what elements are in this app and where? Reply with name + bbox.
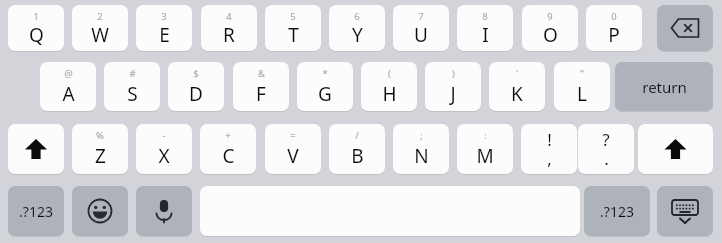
staticText: A (62, 81, 75, 107)
staticText: 7 (418, 10, 424, 23)
button[interactable]: + (200, 124, 256, 174)
staticText: D (189, 81, 203, 107)
button[interactable]: / (329, 124, 385, 174)
button[interactable]: = (265, 124, 321, 174)
staticText: % (96, 129, 104, 142)
staticText: - (162, 129, 166, 142)
staticText: E (159, 22, 170, 48)
staticText: # (129, 67, 136, 80)
button[interactable]: .?123 (8, 186, 64, 236)
button[interactable]: ! (521, 124, 577, 174)
button[interactable]: 2 (72, 5, 128, 51)
staticText: I (482, 22, 489, 48)
staticText: $ (193, 67, 199, 80)
staticText: 2 (97, 10, 103, 23)
staticText: 1 (33, 10, 39, 23)
staticText: B (351, 143, 364, 169)
button[interactable]: 0 (586, 5, 642, 51)
button[interactable]: 4 (201, 5, 257, 51)
staticText: 5 (290, 10, 296, 23)
button[interactable]: @ (40, 62, 96, 111)
button[interactable]: & (233, 62, 289, 111)
staticText: C (222, 143, 235, 169)
staticText: N (414, 143, 429, 169)
staticText: Y (352, 22, 363, 48)
staticText: Z (95, 143, 106, 169)
button[interactable]: 7 (393, 5, 449, 51)
staticText: ) (452, 67, 455, 80)
button[interactable]: - (136, 124, 192, 174)
button[interactable]: Dictation (136, 186, 192, 236)
staticText: S (127, 81, 138, 107)
staticText: 4 (226, 10, 232, 23)
staticText: 3 (161, 10, 167, 23)
staticText: & (258, 67, 265, 80)
staticText: H (382, 81, 397, 107)
staticText: ; (420, 129, 423, 142)
staticText: .?123 (19, 202, 53, 221)
button[interactable]: ) (425, 62, 481, 111)
staticText: Q (29, 22, 44, 48)
button[interactable]: “ (554, 62, 610, 111)
staticText: K (511, 81, 523, 107)
button[interactable]: # (104, 62, 160, 111)
button[interactable]: 6 (329, 5, 385, 51)
staticText: L (577, 81, 587, 107)
staticText: @ (64, 67, 73, 80)
button[interactable]: Backspace (657, 5, 713, 51)
button[interactable]: 8 (457, 5, 513, 51)
staticText: ‘ (516, 67, 518, 80)
staticText: U (414, 22, 428, 48)
button[interactable]: ; (393, 124, 449, 174)
staticText: , (547, 147, 552, 170)
staticText: + (225, 129, 231, 142)
button[interactable]: Hide keyboard (657, 186, 713, 236)
button[interactable]: Emoji (72, 186, 128, 236)
button[interactable]: 3 (136, 5, 192, 51)
staticText: 9 (547, 10, 553, 23)
button[interactable]: 9 (522, 5, 578, 51)
staticText: 0 (611, 10, 617, 23)
staticText: X (158, 143, 170, 169)
button[interactable]: 1 (8, 5, 64, 51)
button[interactable]: .?123 (584, 186, 650, 236)
button[interactable]: * (297, 62, 353, 111)
button[interactable]: % (72, 124, 128, 174)
button[interactable]: ( (361, 62, 417, 111)
button[interactable]: Shift (8, 124, 64, 174)
staticText: * (322, 67, 328, 80)
staticText: = (290, 129, 296, 142)
staticText: F (256, 81, 266, 107)
staticText: R (223, 22, 235, 48)
button[interactable]: 5 (265, 5, 321, 51)
staticText: . (604, 147, 609, 170)
button[interactable]: Shift (638, 124, 713, 174)
staticText: W (91, 22, 109, 48)
staticText: ( (388, 67, 391, 80)
staticText: 8 (482, 10, 488, 23)
staticText: ! (547, 128, 552, 149)
staticText: M (476, 143, 494, 169)
staticText: P (608, 22, 620, 48)
staticText: return (642, 77, 687, 97)
button[interactable]: ‘ (489, 62, 545, 111)
staticText: “ (580, 67, 584, 80)
staticText: O (543, 22, 558, 48)
staticText: V (287, 143, 299, 169)
staticText: / (355, 129, 359, 142)
button[interactable]: return (615, 62, 713, 111)
staticText: J (450, 81, 456, 107)
button[interactable]: : (457, 124, 513, 174)
staticText: ? (602, 128, 610, 149)
staticText: 6 (354, 10, 360, 23)
button[interactable]: $ (168, 62, 224, 111)
staticText: .?123 (600, 202, 634, 221)
button[interactable]: ? (578, 124, 634, 174)
staticText: G (318, 81, 332, 107)
staticText: : (484, 129, 487, 142)
staticText: T (288, 22, 299, 48)
